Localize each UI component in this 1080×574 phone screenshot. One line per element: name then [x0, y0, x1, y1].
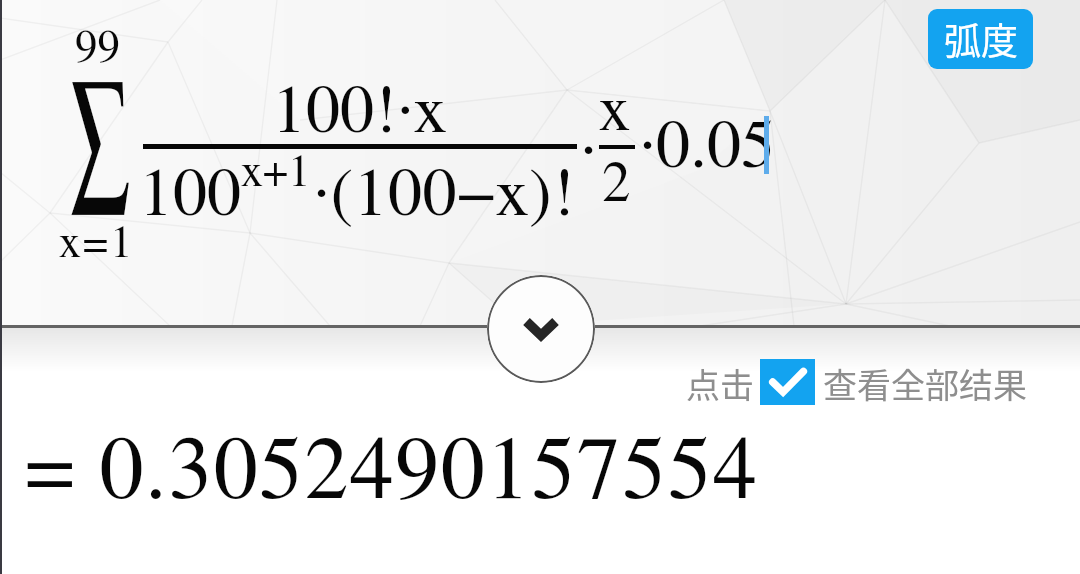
button[interactable]: View all results [760, 359, 815, 405]
staticText: ·(100−x)! [313, 161, 576, 229]
staticText: 2 [602, 155, 631, 212]
staticText: = 0.3052490157554 [25, 428, 759, 516]
staticText: 99 [75, 25, 121, 70]
staticText: 弧度 [944, 12, 1018, 66]
staticText: x+1 [241, 150, 311, 195]
staticText: · [580, 118, 598, 186]
button[interactable]: 弧度 [928, 9, 1033, 69]
staticText: 100!·x [272, 78, 447, 146]
staticText: ∑ [70, 59, 131, 230]
staticText: x [599, 79, 630, 143]
button[interactable]: 点击 [686, 359, 754, 408]
staticText: 100 [139, 161, 242, 229]
button[interactable]: 查看全部结果 [823, 359, 1027, 408]
staticText: ·0.05 [639, 113, 776, 181]
staticText: x=1 [59, 221, 135, 266]
button[interactable]: Collapse [487, 275, 595, 383]
